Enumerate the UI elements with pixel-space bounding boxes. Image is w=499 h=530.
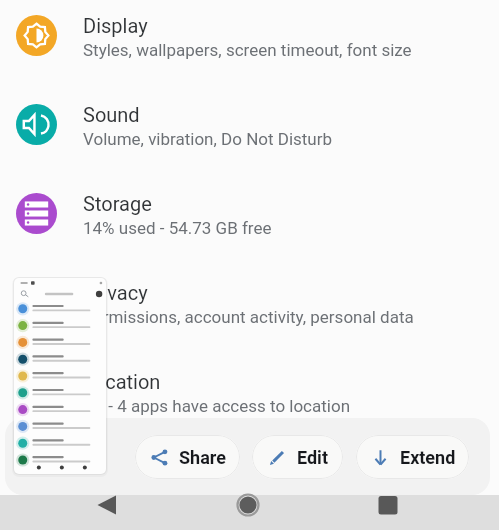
staticText: Display: [83, 14, 148, 37]
button[interactable]: Privacy: [0, 267, 499, 347]
staticText: 14% used - 54.73 GB free: [83, 218, 272, 238]
staticText: Location: [83, 370, 161, 393]
button[interactable]: Share: [135, 435, 240, 479]
staticText: Styles, wallpapers, screen timeout, font…: [83, 40, 412, 60]
staticText: Extend: [400, 447, 456, 468]
staticText: On - 4 apps have access to location: [83, 396, 351, 416]
staticText: Permissions, account activity, personal …: [83, 307, 414, 327]
button[interactable]: Location: [0, 356, 499, 436]
staticText: Edit: [297, 447, 328, 468]
button[interactable]: Home: [228, 495, 268, 530]
button[interactable]: Sound: [0, 89, 499, 169]
staticText: Storage: [83, 192, 152, 215]
button[interactable]: Back: [87, 495, 127, 530]
button[interactable]: Storage: [0, 178, 499, 258]
staticText: Share: [179, 447, 226, 468]
staticText: Sound: [83, 103, 140, 126]
button[interactable]: Extend: [356, 435, 469, 479]
staticText: Privacy: [83, 281, 148, 304]
button[interactable]: Recent apps: [368, 495, 408, 530]
staticText: Volume, vibration, Do Not Disturb: [83, 129, 333, 149]
button[interactable]: Screenshot preview: [14, 278, 106, 474]
button[interactable]: Display: [0, 0, 499, 80]
button[interactable]: Edit: [252, 435, 343, 479]
